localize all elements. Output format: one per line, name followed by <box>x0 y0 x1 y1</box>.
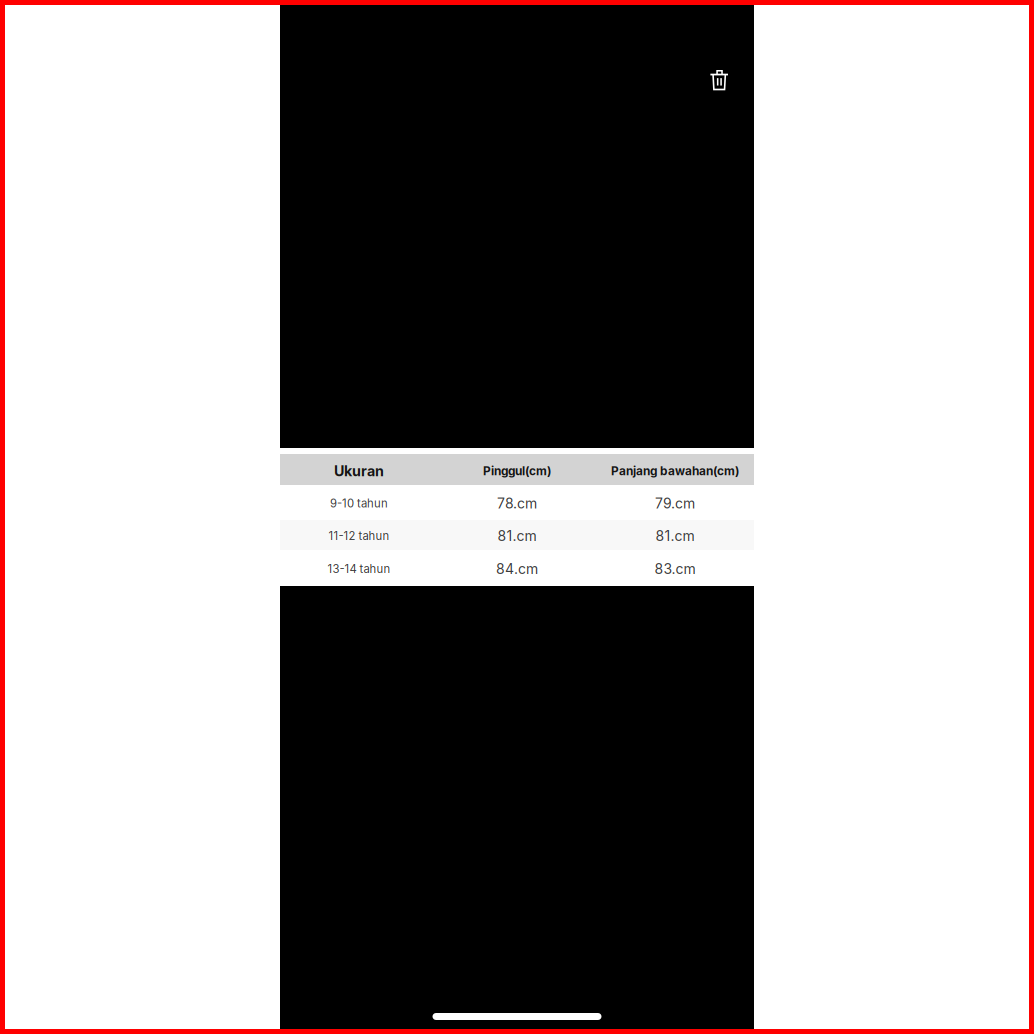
staticText: 79.cm <box>655 495 695 512</box>
staticText: 81.cm <box>497 527 536 544</box>
staticText: 9-10 tahun <box>330 497 388 510</box>
staticText: 83.cm <box>654 560 695 577</box>
staticText: 11-12 tahun <box>328 529 389 543</box>
staticText: Pinggul(cm) <box>483 464 551 478</box>
staticText: 84.cm <box>496 560 538 577</box>
button[interactable]: Delete photo <box>701 61 737 99</box>
staticText: Ukuran <box>334 462 384 480</box>
staticText: 13-14 tahun <box>327 562 390 576</box>
staticText: 81.cm <box>655 527 694 544</box>
staticText: 78.cm <box>497 495 537 512</box>
staticText: Panjang bawahan(cm) <box>611 464 739 478</box>
